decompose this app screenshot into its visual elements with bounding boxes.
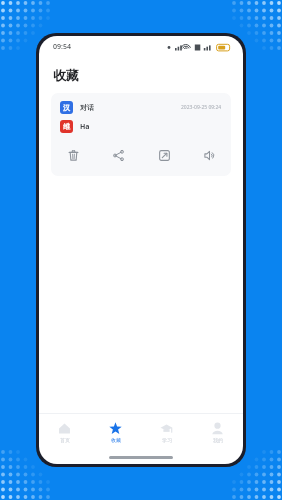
staticText: 学习 [162,437,172,443]
button[interactable]: 汉 [51,93,231,176]
button[interactable]: 我的 [192,419,243,446]
staticText: 首页 [60,437,70,443]
staticText: 我的 [213,437,223,443]
button[interactable]: Play sound [196,142,222,168]
staticText: 对话 [80,103,94,112]
button[interactable]: Fullscreen [151,142,177,168]
staticText: 09:54 [53,42,71,52]
staticText: 2023-09-25 09:24 [181,104,222,111]
button[interactable]: 收藏 [90,419,141,446]
button[interactable]: 首页 [39,419,90,446]
button[interactable]: Delete [60,142,86,168]
staticText: Ha [80,122,90,132]
staticText: 收藏 [111,437,121,443]
button[interactable]: Share [105,142,131,168]
button[interactable]: 学习 [141,419,192,446]
staticText: 维 [63,122,70,131]
staticText: 收藏 [53,67,79,83]
staticText: 汉 [63,103,70,112]
